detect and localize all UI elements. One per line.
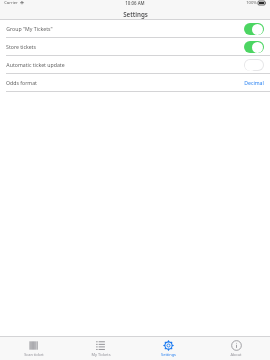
- staticText: Settings: [123, 10, 148, 18]
- button[interactable]: Scan ticket: [0, 337, 67, 360]
- button[interactable]: About: [202, 337, 270, 360]
- button[interactable]: Odds format: [0, 74, 270, 91]
- staticText: 10:06 AM: [125, 0, 145, 6]
- button[interactable]: Automatic ticket update: [0, 56, 270, 73]
- button[interactable]: Group "My Tickets": [0, 20, 270, 37]
- button[interactable]: Settings: [134, 337, 202, 360]
- staticText: Odds format: [6, 79, 37, 86]
- staticText: About: [230, 352, 242, 357]
- staticText: 100%: [246, 0, 257, 6]
- staticText: Settings: [161, 352, 176, 357]
- button[interactable]: My Tickets: [67, 337, 134, 360]
- staticText: Scan ticket: [24, 352, 44, 357]
- staticText: Store tickets: [6, 43, 36, 50]
- button[interactable]: Toggle off: [244, 59, 264, 71]
- staticText: My Tickets: [91, 352, 111, 357]
- staticText: Group "My Tickets": [6, 25, 53, 32]
- button[interactable]: Toggle on: [244, 23, 264, 35]
- staticText: Carrier: [4, 0, 18, 6]
- button[interactable]: Store tickets: [0, 38, 270, 55]
- staticText: Decimal: [244, 79, 264, 86]
- staticText: Automatic ticket update: [6, 61, 65, 68]
- button[interactable]: Toggle on: [244, 41, 264, 53]
